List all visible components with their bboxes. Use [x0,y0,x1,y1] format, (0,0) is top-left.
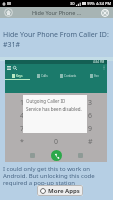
staticText: Contacts [64,74,77,78]
staticText: # [88,137,93,147]
staticText: 0 [54,137,59,147]
button[interactable]: 7 [5,122,39,135]
staticText: 6 [88,111,93,121]
staticText: 4 [20,111,25,121]
button[interactable]: 0 [39,135,73,148]
staticText: 4:34 PM [93,60,105,64]
button[interactable]: 1 [5,96,39,109]
button[interactable]: Call [51,150,62,161]
button[interactable]: Close [101,9,109,17]
staticText: Outgoing Caller ID [26,98,66,104]
staticText: 30 [70,1,75,6]
staticText: Fav [94,74,99,78]
button[interactable]: Keys [5,71,30,82]
staticText: #31# [3,40,21,50]
staticText: Hide Your Phone ... [32,9,82,16]
staticText: Hide Your Phone From Caller ID: [3,30,109,40]
staticText: 9 [88,124,93,134]
button[interactable]: 9 [73,122,107,135]
button[interactable]: 8 [39,122,73,135]
button[interactable]: # [73,135,107,148]
button[interactable]: Calls [30,71,55,82]
button[interactable]: 3 [73,96,107,109]
staticText: I could only get this to work on Android… [3,165,111,187]
button[interactable]: * [5,135,39,148]
staticText: 2 [54,98,59,108]
staticText: Service has been disabled. [26,106,82,112]
button[interactable]: Add contact [30,153,35,158]
button[interactable]: 5 [39,109,73,122]
staticText: Keys [16,74,23,78]
staticText: 1 [20,98,25,108]
button[interactable]: More Apps [37,185,83,196]
button[interactable]: Contacts [55,71,81,82]
staticText: Calls [41,74,48,78]
staticText: * [20,137,24,147]
button[interactable]: Backspace [78,153,83,158]
button[interactable]: 4 [5,109,39,122]
button[interactable]: Home [4,8,13,17]
staticText: 99% 4:34 PM [86,1,112,6]
button[interactable]: 2 [39,96,73,109]
staticText: 3 [88,98,93,108]
staticText: More Apps [48,187,80,195]
staticText: 8 [54,124,59,134]
button[interactable]: 6 [73,109,107,122]
button[interactable]: Fav [81,71,107,82]
staticText: 7 [20,124,25,134]
